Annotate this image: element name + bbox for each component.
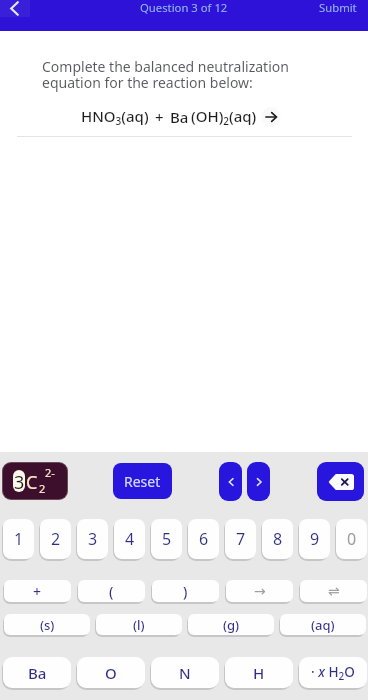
button[interactable]: Next [247, 462, 270, 501]
button[interactable]: → [226, 580, 293, 602]
button[interactable]: Reaction arrow [261, 107, 281, 127]
staticText: HNO3(aq) [81, 106, 149, 128]
button[interactable]: (l) [96, 614, 182, 635]
staticText: Submit [319, 0, 357, 15]
button[interactable]: H [225, 657, 293, 688]
staticText: Ba [170, 107, 189, 127]
staticText: 9 [310, 528, 320, 550]
staticText: 6 [199, 528, 209, 550]
staticText: N [179, 663, 191, 683]
button[interactable]: 2 [40, 519, 71, 559]
button[interactable]: Previous [219, 462, 242, 501]
button[interactable]: · x H2O [299, 657, 367, 688]
staticText: ⇌ [328, 583, 340, 599]
button[interactable]: Ba [3, 657, 71, 688]
button[interactable]: Reset [113, 463, 172, 499]
staticText: C [26, 470, 38, 495]
button[interactable]: 3 [3, 463, 67, 499]
button[interactable]: + [4, 580, 71, 602]
button[interactable]: Backspace [317, 462, 364, 501]
staticText: 2- [45, 465, 55, 480]
button[interactable]: 0 [336, 519, 367, 559]
staticText: + [33, 582, 42, 601]
button[interactable]: 9 [299, 519, 330, 559]
button[interactable]: 3 [77, 519, 108, 559]
staticText: Ba [28, 663, 47, 683]
button[interactable]: 5 [151, 519, 182, 559]
staticText: 4 [125, 528, 135, 550]
button[interactable]: ) [152, 580, 219, 602]
button[interactable]: Back [0, 0, 30, 17]
staticText: → [254, 583, 266, 599]
button[interactable]: (s) [4, 614, 90, 635]
staticText: Complete the balanced neutralization equ… [42, 57, 289, 92]
staticText: 7 [236, 528, 246, 550]
button[interactable]: ⇌ [300, 580, 367, 602]
button[interactable]: O [77, 657, 145, 688]
staticText: (OH)2(aq) [191, 106, 257, 128]
staticText: + [155, 107, 164, 127]
staticText: 5 [162, 528, 172, 550]
staticText: ( [109, 582, 114, 601]
button[interactable]: 8 [262, 519, 293, 559]
staticText: 2 [51, 528, 61, 550]
button[interactable]: N [151, 657, 219, 688]
button[interactable]: 1 [3, 519, 34, 559]
button[interactable]: 4 [114, 519, 145, 559]
staticText: 3 [88, 528, 98, 550]
staticText: (aq) [311, 616, 335, 634]
staticText: 8 [273, 528, 283, 550]
staticText: 0 [347, 528, 357, 550]
staticText: ) [183, 582, 188, 601]
staticText: 2 [39, 481, 46, 496]
staticText: 1 [14, 528, 24, 550]
button[interactable]: 7 [225, 519, 256, 559]
staticText: Question 3 of 12 [140, 0, 228, 15]
button[interactable]: (g) [188, 614, 274, 635]
staticText: (g) [223, 616, 240, 634]
staticText: (s) [40, 616, 55, 634]
staticText: 3 [14, 470, 25, 492]
button[interactable]: ( [78, 580, 145, 602]
staticText: H [253, 663, 265, 683]
staticText: · x H2O [311, 663, 355, 683]
button[interactable]: Submit [319, 0, 357, 15]
staticText: O [105, 663, 117, 683]
staticText: (l) [133, 616, 145, 634]
button[interactable]: (aq) [280, 614, 366, 635]
staticText: Reset [124, 472, 161, 491]
button[interactable]: 6 [188, 519, 219, 559]
